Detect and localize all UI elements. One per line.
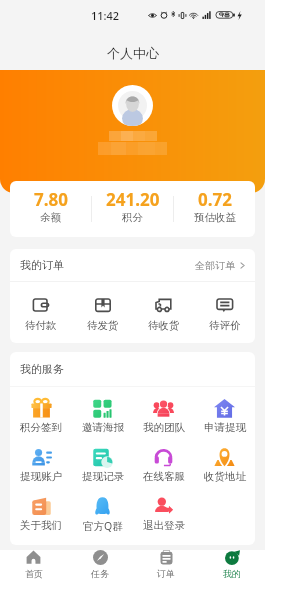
- staticText: 收货地址: [204, 470, 246, 483]
- button[interactable]: 7.80: [10, 181, 91, 237]
- button[interactable]: 241.20: [92, 181, 173, 237]
- staticText: 提现记录: [82, 470, 124, 483]
- button[interactable]: 任务: [67, 550, 133, 579]
- staticText: 积分: [122, 211, 143, 224]
- button[interactable]: 待付款: [10, 282, 72, 343]
- staticText: 任务: [91, 568, 109, 579]
- staticText: 邀请海报: [82, 421, 124, 434]
- staticText: 241.20: [106, 188, 160, 211]
- staticText: 7.80: [34, 188, 68, 211]
- button[interactable]: 退出登录: [133, 485, 194, 534]
- button[interactable]: 关于我们: [10, 485, 72, 534]
- staticText: 全部订单: [195, 259, 235, 272]
- button[interactable]: 在线客服: [133, 436, 194, 485]
- staticText: 待发货: [87, 319, 119, 332]
- staticText: 待评价: [209, 319, 241, 332]
- staticText: 积分签到: [20, 421, 62, 434]
- staticText: 0.72: [198, 188, 232, 211]
- button[interactable]: 首页: [0, 550, 67, 579]
- staticText: 待收货: [148, 319, 180, 332]
- button[interactable]: 待发货: [72, 282, 133, 343]
- button[interactable]: 我的团队: [133, 387, 194, 436]
- staticText: 在线客服: [143, 470, 185, 483]
- staticText: 11:42: [91, 8, 120, 23]
- button[interactable]: 提现记录: [72, 436, 133, 485]
- button[interactable]: 积分签到: [10, 387, 72, 436]
- button[interactable]: 邀请海报: [72, 387, 133, 436]
- button[interactable]: Avatar: [112, 85, 153, 126]
- staticText: 订单: [157, 568, 175, 579]
- staticText: 退出登录: [143, 519, 185, 532]
- button[interactable]: 官方Q群: [72, 485, 133, 534]
- button[interactable]: 订单: [133, 550, 199, 579]
- staticText: 余额: [40, 211, 61, 224]
- staticText: 关于我们: [20, 519, 62, 532]
- button[interactable]: 待收货: [133, 282, 194, 343]
- staticText: 申请提现: [204, 421, 246, 434]
- staticText: 我的订单: [20, 258, 64, 272]
- button[interactable]: 申请提现: [194, 387, 255, 436]
- staticText: 提现账户: [20, 470, 62, 483]
- staticText: 我的团队: [143, 421, 185, 434]
- staticText: 我的服务: [20, 362, 64, 376]
- staticText: 个人中心: [107, 45, 159, 61]
- button[interactable]: 0.72: [174, 181, 255, 237]
- staticText: 待付款: [25, 319, 57, 332]
- staticText: 我的: [223, 568, 241, 579]
- staticText: 首页: [25, 568, 43, 579]
- staticText: 预估收益: [194, 211, 236, 224]
- button[interactable]: 待评价: [194, 282, 255, 343]
- button[interactable]: 提现账户: [10, 436, 72, 485]
- staticText: 官方Q群: [83, 519, 123, 533]
- button[interactable]: 收货地址: [194, 436, 255, 485]
- button[interactable]: 我的: [199, 550, 265, 579]
- button[interactable]: 我的订单: [10, 249, 255, 281]
